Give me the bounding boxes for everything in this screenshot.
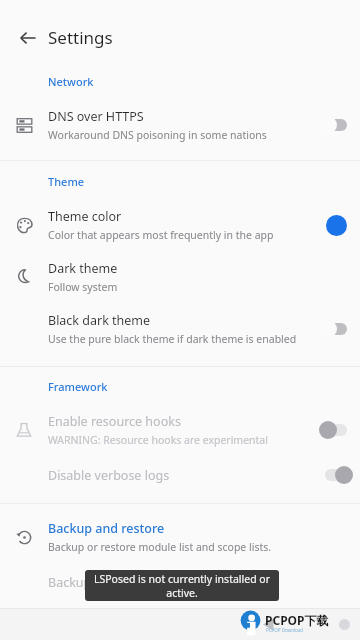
staticText: Theme color [48,208,122,225]
staticText: Theme [48,174,85,189]
button[interactable]: Enable resource hooks [0,404,360,456]
button[interactable]: Back [8,18,48,58]
staticText: Enable resource hooks [48,413,181,430]
button[interactable]: Theme color [0,199,360,251]
button[interactable]: DNS over HTTPS [0,99,360,151]
button[interactable]: Home [164,608,360,640]
staticText: WARNING: Resource hooks are experimental [48,433,268,447]
staticText: LSPosed is not currently installed or ac… [85,572,279,600]
staticText: DNS over HTTPS [48,108,144,125]
staticText: Settings [48,26,113,49]
button[interactable]: Backup and restore [0,511,360,563]
button[interactable]: Restore [0,601,360,639]
staticText: Dark theme [48,260,118,277]
staticText: Use the pure black theme if dark theme i… [48,332,297,346]
staticText: Workaround DNS poisoning in some nations [48,128,267,142]
staticText: PCPOP下载 [265,612,329,628]
button[interactable]: Disable verbose logs [0,456,360,494]
staticText: Backup [48,574,92,591]
staticText: Backup and restore [48,520,165,537]
staticText: Backup or restore module list and scope … [48,540,272,554]
button[interactable]: Back [88,608,360,640]
staticText: Framework [48,379,108,394]
staticText: Color that appears most frequently in th… [48,228,274,242]
staticText: Follow system [48,280,118,294]
button[interactable]: Black dark theme [0,303,360,355]
button[interactable]: Backup [0,563,360,601]
staticText: Network [48,74,94,89]
staticText: PCPOP Download [266,627,304,633]
staticText: Black dark theme [48,312,151,329]
button[interactable]: Dark theme [0,251,360,303]
staticText: Disable verbose logs [48,467,170,484]
